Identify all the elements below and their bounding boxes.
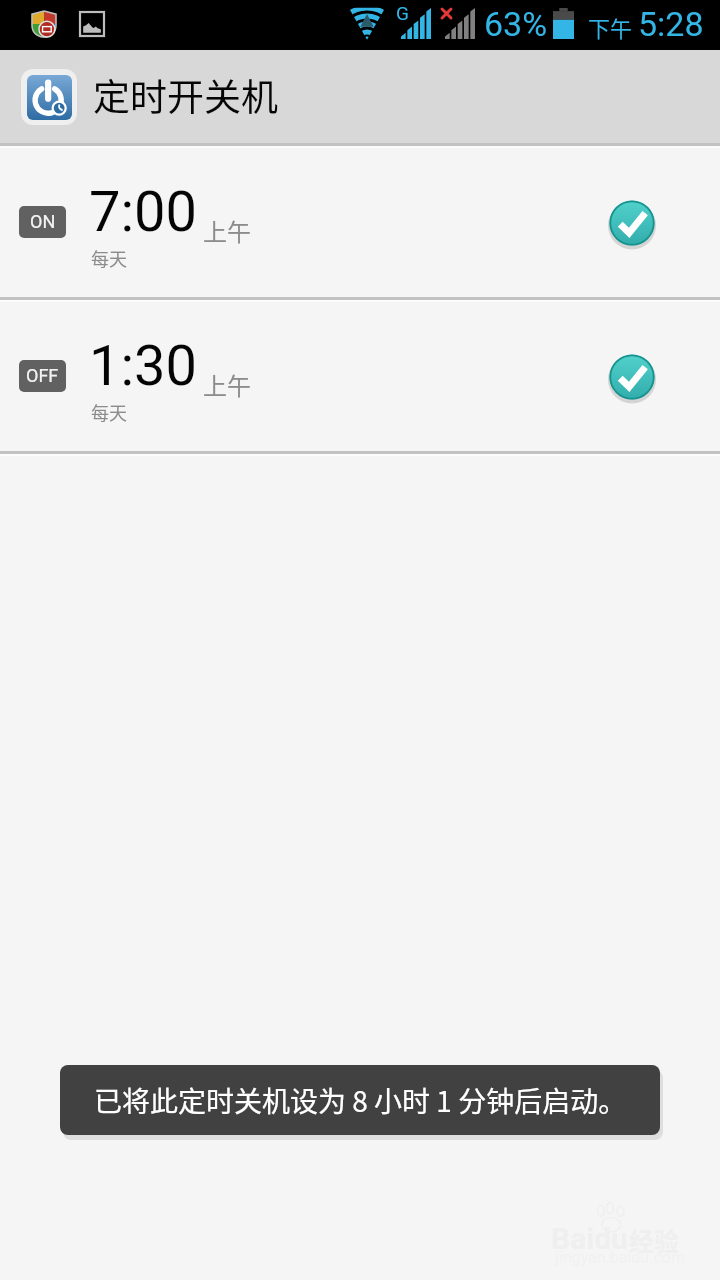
staticText: 每天 — [91, 399, 127, 425]
staticText: 上午 — [203, 367, 251, 402]
button[interactable]: App icon — [19, 67, 79, 127]
button[interactable]: ON — [0, 148, 720, 297]
button[interactable]: Enabled — [608, 199, 656, 247]
button[interactable]: OFF — [0, 302, 720, 451]
staticText: 已将此定时关机设为 8 小时 1 分钟后启动。 — [94, 1080, 627, 1121]
button[interactable]: 已将此定时关机设为 8 小时 1 分钟后启动。 — [60, 1065, 660, 1135]
staticText: 定时开关机 — [93, 68, 278, 122]
staticText: 下午 — [588, 11, 633, 43]
button[interactable]: OFF — [19, 360, 66, 392]
staticText: G — [396, 2, 409, 24]
staticText: 63% — [484, 4, 548, 44]
staticText: 1:30 — [89, 333, 197, 399]
button[interactable]: ON — [19, 206, 66, 238]
button[interactable]: Enabled — [608, 353, 656, 401]
staticText: 7:00 — [89, 179, 197, 245]
staticText: 每天 — [91, 245, 127, 271]
staticText: ON — [30, 211, 56, 232]
staticText: 上午 — [203, 213, 251, 248]
staticText: 5:28 — [638, 4, 704, 44]
staticText: OFF — [26, 365, 59, 386]
